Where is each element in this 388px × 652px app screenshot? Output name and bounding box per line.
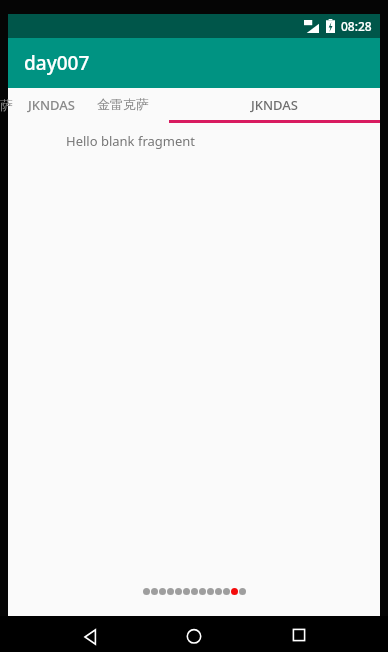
button[interactable]: Back: [75, 628, 105, 652]
button[interactable]: Page indicator: [143, 588, 246, 595]
staticText: day007: [24, 50, 90, 76]
button[interactable]: Home: [179, 628, 209, 652]
staticText: JKNDAS: [251, 96, 298, 114]
staticText: 金雷克萨: [97, 96, 149, 112]
button[interactable]: JKNDAS: [28, 88, 75, 126]
button[interactable]: Recent apps: [284, 628, 314, 652]
staticText: JKNDAS: [28, 96, 75, 114]
button[interactable]: 金雷克萨: [97, 88, 149, 126]
button[interactable]: JKNDAS: [169, 88, 380, 126]
staticText: 08:28: [341, 18, 372, 34]
staticText: Hello blank fragment: [66, 132, 195, 150]
staticText: 萨: [0, 97, 13, 113]
